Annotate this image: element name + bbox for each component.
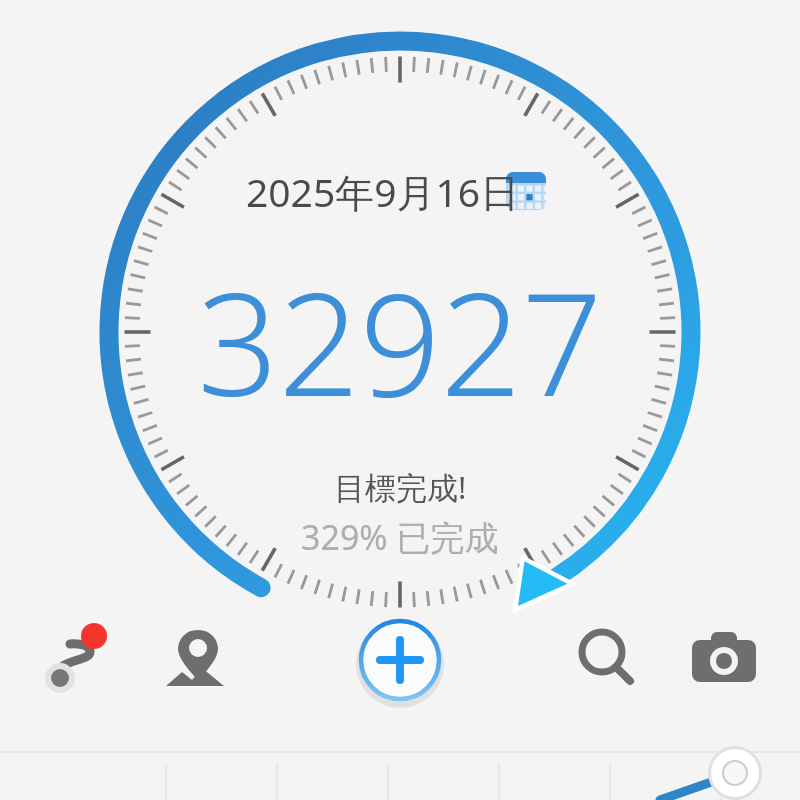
staticText: 329% 已完成: [301, 514, 499, 560]
button[interactable]: Places: [152, 614, 244, 706]
button[interactable]: Add: [354, 614, 446, 706]
button[interactable]: Search: [562, 614, 654, 706]
staticText: 2025年9月16日: [246, 165, 520, 218]
staticText: 32927: [197, 244, 603, 437]
button[interactable]: Camera: [678, 614, 770, 706]
button[interactable]: Route: [36, 614, 128, 706]
staticText: 目標完成!: [334, 466, 467, 508]
